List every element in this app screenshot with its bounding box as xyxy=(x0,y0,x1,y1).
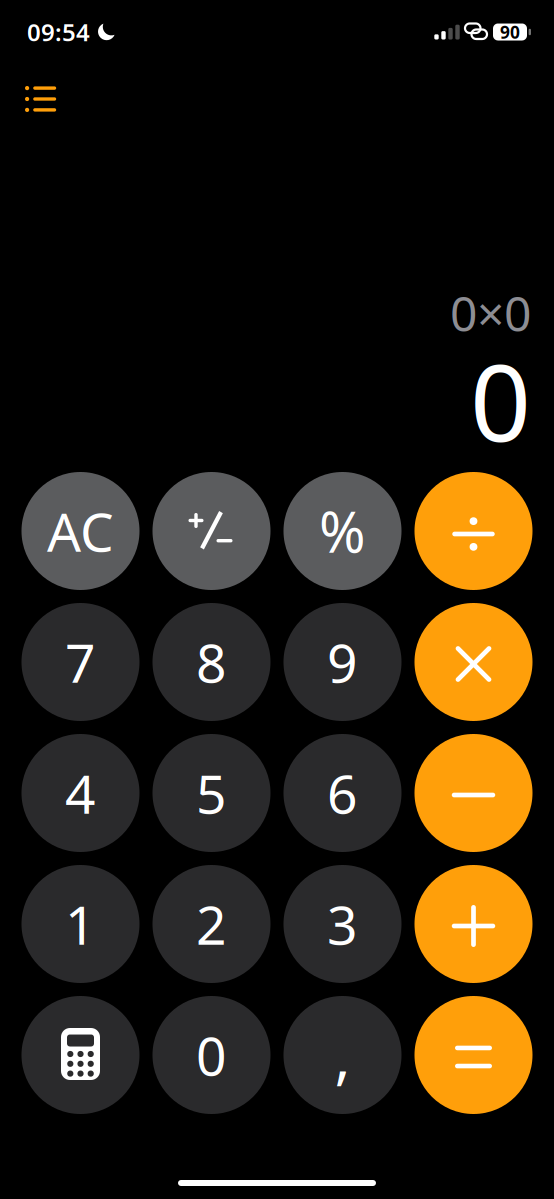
button[interactable]: Toggle sign xyxy=(152,472,270,590)
staticText: 1 xyxy=(65,889,96,959)
button[interactable]: 7 xyxy=(21,603,139,721)
staticText: 2 xyxy=(196,889,227,959)
staticText: 9 xyxy=(327,627,358,697)
staticText: 0 xyxy=(196,1020,227,1090)
staticText: 09:54 xyxy=(27,16,90,48)
staticText: % xyxy=(319,494,366,568)
button[interactable]: 0 xyxy=(152,996,270,1114)
button[interactable]: 5 xyxy=(152,734,270,852)
button[interactable]: % xyxy=(283,472,401,590)
staticText: 6 xyxy=(327,758,358,828)
button[interactable]: Plus xyxy=(414,865,532,983)
staticText: , xyxy=(334,1015,350,1095)
button[interactable]: AC xyxy=(21,472,139,590)
staticText: 90 xyxy=(500,20,520,43)
staticText: 0 xyxy=(470,329,531,471)
button[interactable]: Divide xyxy=(414,472,532,590)
button[interactable]: 6 xyxy=(283,734,401,852)
staticText: AC xyxy=(47,496,114,566)
staticText: 8 xyxy=(196,627,227,697)
button[interactable]: 3 xyxy=(283,865,401,983)
staticText: 3 xyxy=(327,889,358,959)
staticText: 4 xyxy=(65,758,96,828)
button[interactable]: Scientific calculator xyxy=(21,996,139,1114)
button[interactable]: History xyxy=(0,74,74,124)
button[interactable]: 2 xyxy=(152,865,270,983)
button[interactable]: Equals xyxy=(414,996,532,1114)
staticText: 5 xyxy=(196,758,227,828)
staticText: 7 xyxy=(65,627,96,697)
button[interactable]: 9 xyxy=(283,603,401,721)
button[interactable]: Multiply xyxy=(414,603,532,721)
button[interactable]: 4 xyxy=(21,734,139,852)
button[interactable]: Minus xyxy=(414,734,532,852)
staticText: 0×0 xyxy=(450,281,531,345)
button[interactable]: 8 xyxy=(152,603,270,721)
button[interactable]: 1 xyxy=(21,865,139,983)
button[interactable]: , xyxy=(283,996,401,1114)
